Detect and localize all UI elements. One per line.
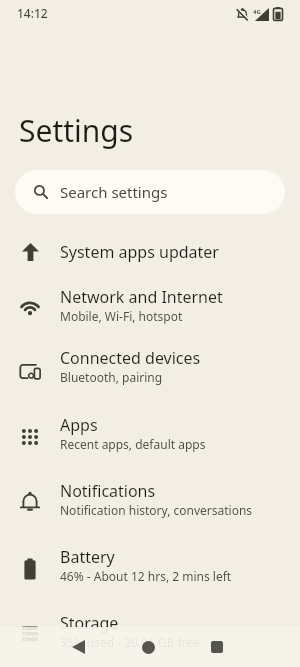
button[interactable]: Connected devices bbox=[0, 341, 300, 408]
staticText: Bluetooth, pairing bbox=[60, 369, 163, 385]
button[interactable]: Storage bbox=[0, 606, 300, 667]
staticText: Settings bbox=[19, 110, 134, 151]
staticText: Battery bbox=[60, 546, 115, 568]
staticText: 46% - About 12 hrs, 2 mins left bbox=[60, 568, 232, 584]
staticText: Storage bbox=[60, 612, 119, 634]
button[interactable] bbox=[72, 640, 85, 654]
button[interactable]: Network and Internet bbox=[0, 280, 300, 341]
staticText: Search settings bbox=[60, 182, 168, 202]
staticText: 35% used - 20.81 GB free bbox=[60, 634, 201, 650]
staticText: Notification history, conversations bbox=[60, 502, 253, 518]
staticText: Network and Internet bbox=[60, 286, 223, 308]
staticText: Connected devices bbox=[60, 347, 201, 369]
button[interactable] bbox=[211, 641, 223, 653]
button[interactable] bbox=[142, 641, 155, 654]
staticText: System apps updater bbox=[60, 241, 219, 263]
staticText: 4G bbox=[253, 8, 261, 16]
staticText: 14:12 bbox=[17, 5, 48, 21]
button[interactable]: System apps updater bbox=[0, 224, 300, 280]
button[interactable]: Notifications bbox=[0, 474, 300, 540]
staticText: Apps bbox=[60, 414, 98, 436]
staticText: Mobile, Wi-Fi, hotspot bbox=[60, 308, 183, 324]
staticText: Recent apps, default apps bbox=[60, 436, 206, 452]
button[interactable]: Battery bbox=[0, 540, 300, 606]
button[interactable]: Search settings bbox=[15, 170, 285, 214]
staticText: Notifications bbox=[60, 480, 156, 502]
button[interactable]: Apps bbox=[0, 408, 300, 474]
